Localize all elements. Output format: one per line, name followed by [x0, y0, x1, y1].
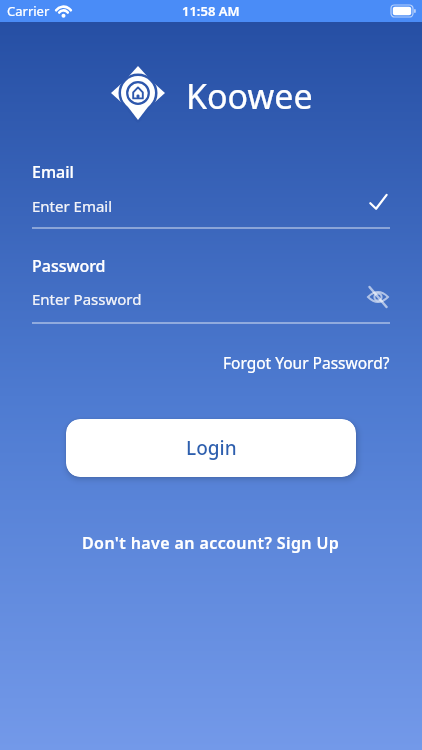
- staticText: Carrier: [7, 2, 50, 20]
- staticText: Koowee: [186, 73, 313, 119]
- button[interactable]: Don't have an account? Sign Up: [82, 532, 340, 554]
- button[interactable]: Forgot Your Password?: [223, 352, 390, 373]
- staticText: Enter Email: [32, 196, 113, 216]
- button[interactable]: Login: [66, 419, 356, 477]
- staticText: Login: [186, 435, 237, 461]
- staticText: Enter Password: [32, 289, 142, 309]
- staticText: 11:58 AM: [182, 2, 240, 20]
- staticText: Password: [32, 255, 106, 277]
- staticText: Email: [32, 161, 74, 183]
